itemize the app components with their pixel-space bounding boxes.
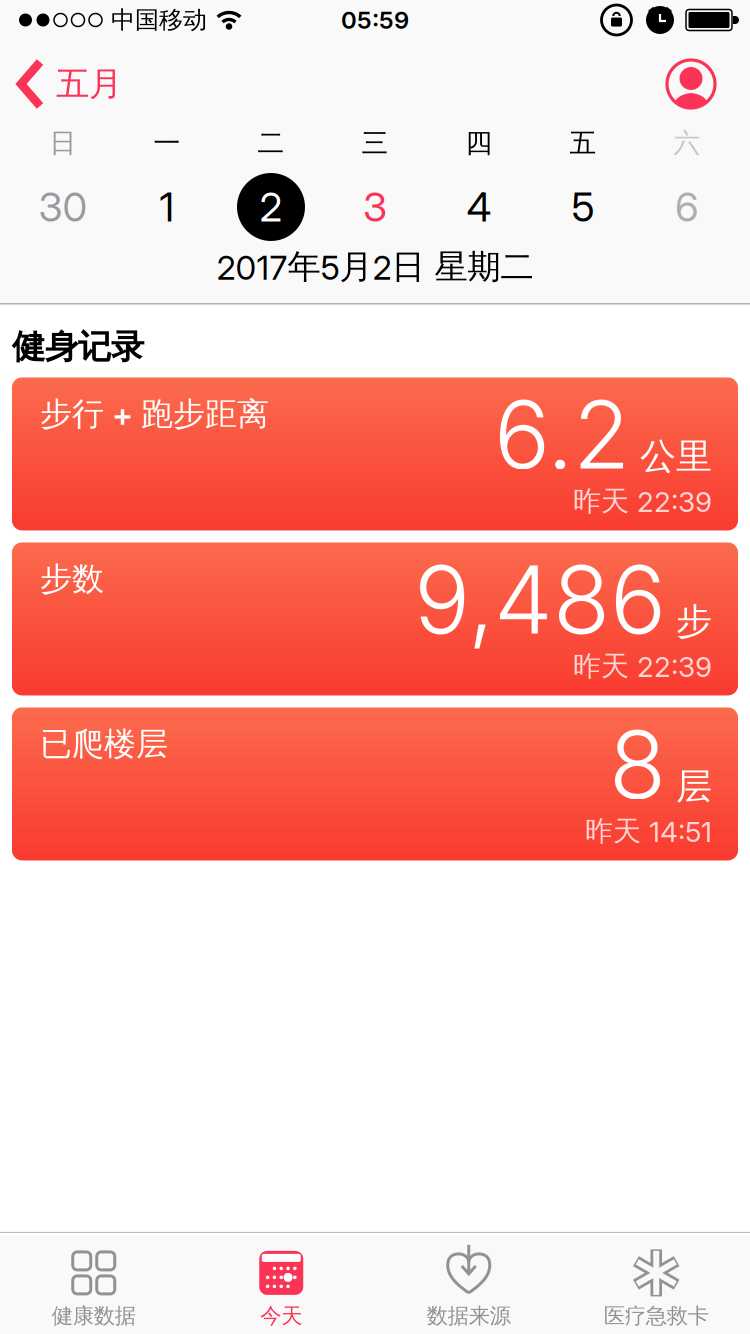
staticText: 8 — [609, 709, 666, 819]
button[interactable]: 1 — [115, 173, 219, 241]
button[interactable]: 5 — [531, 173, 635, 241]
staticText: 已爬楼层 — [40, 724, 168, 764]
staticText: 昨天 14:51 — [585, 814, 712, 848]
button[interactable]: 五月 — [16, 58, 122, 110]
staticText: 05:59 — [341, 6, 409, 34]
staticText: 层 — [676, 764, 712, 808]
staticText: 三 — [361, 127, 388, 159]
staticText: 5 — [571, 183, 594, 231]
staticText: 4 — [466, 183, 491, 231]
staticText: 五 — [569, 127, 596, 159]
button[interactable] — [667, 60, 715, 108]
staticText: 四 — [465, 127, 492, 159]
button[interactable]: 30 — [11, 173, 115, 241]
staticText: 30 — [38, 183, 87, 231]
staticText: 2 — [259, 183, 282, 231]
button[interactable]: 4 — [427, 173, 531, 241]
button[interactable]: 步数 — [12, 542, 738, 695]
button[interactable]: 医疗急救卡 — [562, 1248, 750, 1329]
staticText: 今天 — [260, 1303, 302, 1329]
staticText: 日 — [49, 127, 76, 159]
staticText: 6 — [675, 183, 699, 231]
staticText: 1 — [159, 183, 174, 231]
staticText: 2017年5月2日 星期二 — [216, 246, 533, 287]
staticText: 医疗急救卡 — [604, 1303, 709, 1329]
staticText: 步行 + 跑步距离 — [40, 394, 269, 434]
button[interactable]: 2 — [219, 173, 323, 241]
staticText: 6.2 — [494, 379, 630, 489]
staticText: 健身记录 — [12, 326, 144, 367]
button[interactable]: 已爬楼层 — [12, 707, 738, 860]
staticText: 昨天 22:39 — [573, 649, 712, 683]
staticText: 3 — [363, 183, 387, 231]
staticText: 二 — [257, 127, 284, 159]
staticText: 中国移动 — [111, 5, 207, 35]
staticText: 一 — [153, 127, 180, 159]
button[interactable]: 数据来源 — [375, 1248, 562, 1329]
staticText: 步数 — [40, 559, 104, 599]
staticText: 六 — [673, 127, 700, 159]
staticText: 昨天 22:39 — [573, 484, 712, 518]
button[interactable]: 今天 — [187, 1248, 375, 1329]
button[interactable]: 6 — [635, 173, 739, 241]
staticText: 9,486 — [414, 544, 666, 654]
staticText: 公里 — [640, 434, 712, 478]
button[interactable]: 3 — [323, 173, 427, 241]
button[interactable]: 步行 + 跑步距离 — [12, 377, 738, 530]
staticText: 五月 — [56, 63, 122, 104]
staticText: 健康数据 — [52, 1303, 136, 1329]
button[interactable]: 健康数据 — [0, 1248, 187, 1329]
staticText: 数据来源 — [427, 1303, 511, 1329]
staticText: 步 — [676, 599, 712, 643]
